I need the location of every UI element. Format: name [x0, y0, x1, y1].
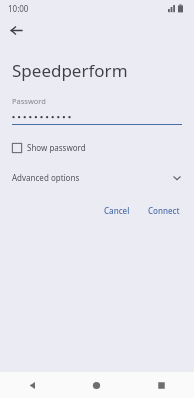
button[interactable]: Password — [12, 96, 182, 125]
staticText: Show password — [27, 142, 86, 153]
button[interactable]: Cancel — [98, 201, 136, 220]
button[interactable]: Recent apps — [129, 372, 194, 398]
staticText: Advanced options — [12, 172, 80, 183]
staticText: 10:00 — [8, 3, 29, 14]
button[interactable]: Show password — [12, 142, 182, 153]
button[interactable]: Back — [0, 372, 64, 398]
staticText: Connect — [148, 205, 180, 216]
staticText: Cancel — [104, 205, 130, 216]
staticText: Password — [12, 96, 46, 106]
button[interactable]: Advanced options — [12, 172, 182, 183]
button[interactable]: Connect — [142, 201, 186, 220]
button[interactable]: Back — [5, 19, 27, 41]
button[interactable]: Home — [64, 372, 129, 398]
staticText: Speedperform — [12, 59, 128, 82]
